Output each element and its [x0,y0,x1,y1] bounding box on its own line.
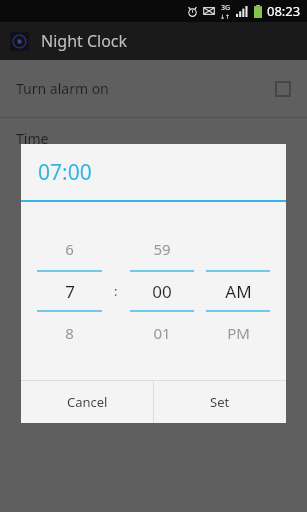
staticText: Time [16,129,49,148]
staticText: 59 [153,239,171,259]
staticText: 6 [65,239,74,259]
button[interactable]: Set [154,381,286,423]
staticText: 01 [153,323,171,343]
staticText: 07:00 [38,158,92,187]
button[interactable]: Turn alarm on [0,60,307,117]
button[interactable]: Hour [31,202,108,380]
staticText: Set [210,393,230,411]
staticText: 8 [65,323,74,343]
staticText: ↓↑ [220,13,231,20]
button[interactable]: Minute [124,202,200,380]
staticText: 00 [152,280,172,303]
staticText: Night Clock [41,30,128,52]
staticText: 08:23 [267,2,301,20]
staticText: PM [227,323,250,343]
other: App icon [10,32,29,51]
staticText: 7 [65,280,75,303]
staticText: AM [225,280,252,303]
button[interactable]: AM PM [200,202,276,380]
staticText: Cancel [67,393,108,411]
other: Turn alarm on checkbox [275,81,291,97]
button[interactable]: Cancel [21,381,153,423]
button[interactable]: Time [0,118,307,158]
staticText: : [114,282,118,300]
staticText: Turn alarm on [16,79,275,98]
staticText: 3G [221,3,231,13]
